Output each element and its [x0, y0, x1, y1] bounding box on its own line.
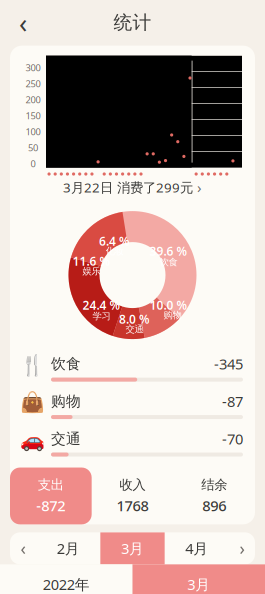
staticText: 支出	[38, 476, 64, 493]
staticText: 6.4 %	[99, 233, 130, 249]
staticText: 100	[25, 125, 40, 138]
staticText: ›	[197, 178, 202, 197]
staticText: 饮食	[51, 355, 81, 373]
button[interactable]: Next month	[229, 532, 255, 564]
staticText: 🍴	[19, 354, 44, 377]
staticText: 3月	[121, 539, 144, 558]
button[interactable]: 支出	[10, 467, 92, 524]
staticText: ›	[239, 537, 244, 560]
button[interactable]: 收入	[92, 467, 173, 524]
staticText: 4月	[185, 539, 208, 558]
button[interactable]: 4月	[165, 532, 229, 564]
button[interactable]: 2022年	[0, 564, 132, 594]
staticText: ‹	[20, 537, 25, 560]
button[interactable]: 3月	[132, 564, 265, 594]
staticText: 🚗	[19, 429, 44, 451]
staticText: ‹	[19, 5, 27, 40]
staticText: 交通	[125, 323, 143, 335]
staticText: 化妆	[105, 245, 123, 257]
staticText: -87	[222, 392, 243, 411]
staticText: 3月22日 消费了299元	[63, 178, 193, 196]
staticText: 8.0 %	[119, 311, 150, 327]
button[interactable]: 3月	[100, 532, 165, 564]
staticText: 1768	[116, 496, 148, 515]
staticText: 39.6 %	[149, 243, 187, 259]
staticText: -872	[36, 496, 65, 515]
staticText: 学习	[92, 310, 110, 322]
staticText: 250	[25, 77, 40, 90]
staticText: 饮食	[159, 256, 177, 268]
staticText: 2月	[57, 539, 80, 558]
staticText: 娱乐	[82, 265, 100, 277]
staticText: 3月	[187, 575, 210, 594]
staticText: 购物	[163, 309, 181, 321]
staticText: 购物	[51, 392, 81, 410]
button[interactable]: 2月	[36, 532, 100, 564]
staticText: 👜	[19, 391, 44, 414]
button[interactable]: Back	[6, 6, 40, 40]
staticText: 10.0 %	[149, 297, 187, 313]
staticText: 统计	[113, 11, 151, 34]
staticText: 200	[25, 93, 40, 106]
staticText: 收入	[119, 476, 145, 493]
staticText: 11.6 %	[72, 253, 110, 269]
staticText: -345	[214, 354, 243, 374]
button[interactable]: Previous month	[10, 532, 36, 564]
staticText: 结余	[201, 476, 227, 493]
staticText: 300	[25, 61, 40, 74]
staticText: -70	[222, 429, 243, 449]
button[interactable]: 3月22日 消费了299元	[10, 172, 255, 203]
staticText: 150	[25, 109, 40, 122]
staticText: 0	[30, 157, 35, 170]
button[interactable]: 结余	[173, 467, 255, 524]
staticText: 896	[202, 496, 226, 515]
staticText: 50	[28, 141, 38, 154]
staticText: 2022年	[43, 575, 90, 594]
staticText: 24.4 %	[82, 297, 120, 313]
staticText: 交通	[51, 430, 81, 448]
